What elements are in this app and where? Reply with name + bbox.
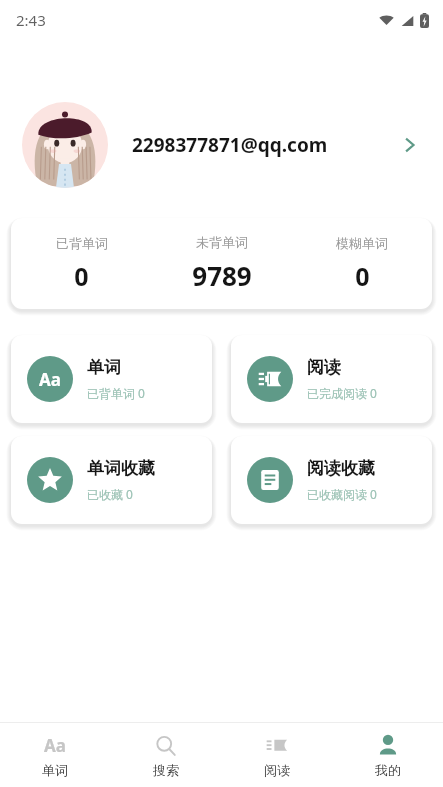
staticText: 阅读收藏 — [307, 458, 375, 479]
button[interactable]: 阅读收藏 — [231, 436, 432, 524]
button[interactable]: 单词收藏 — [11, 436, 212, 524]
button[interactable]: Aa — [0, 727, 110, 784]
staticText: 单词 — [87, 357, 121, 378]
button[interactable]: 2298377871@qq.com — [0, 98, 443, 192]
staticText: 已完成阅读 0 — [307, 385, 377, 401]
staticText: 未背单词 — [196, 234, 248, 250]
button[interactable]: 阅读 — [221, 727, 332, 784]
staticText: 0 — [355, 259, 370, 293]
staticText: 单词收藏 — [87, 458, 155, 479]
staticText: 我的 — [375, 762, 401, 778]
staticText: 阅读 — [264, 762, 290, 778]
staticText: 已收藏阅读 0 — [307, 486, 377, 502]
button[interactable]: 搜索 — [110, 727, 221, 784]
button[interactable]: Aa — [11, 335, 212, 423]
staticText: 已背单词 0 — [87, 385, 145, 401]
staticText: 阅读 — [307, 357, 341, 378]
staticText: Aa — [39, 368, 61, 391]
staticText: Aa — [44, 734, 66, 757]
button[interactable]: 模糊单词 — [292, 229, 432, 299]
staticText: 搜索 — [153, 762, 179, 778]
staticText: 2298377871@qq.com — [132, 132, 328, 158]
staticText: 0 — [74, 259, 89, 293]
button[interactable]: 阅读 — [231, 335, 432, 423]
button[interactable]: 我的 — [332, 727, 443, 784]
staticText: 单词 — [42, 762, 68, 778]
button[interactable]: 未背单词 — [152, 228, 292, 299]
staticText: 9789 — [192, 258, 252, 293]
button[interactable]: 已背单词 — [11, 229, 152, 299]
staticText: 已收藏 0 — [87, 486, 133, 502]
other: Open profile — [399, 134, 421, 156]
staticText: 已背单词 — [56, 235, 108, 251]
staticText: 2:43 — [16, 10, 46, 30]
staticText: 模糊单词 — [336, 235, 388, 251]
